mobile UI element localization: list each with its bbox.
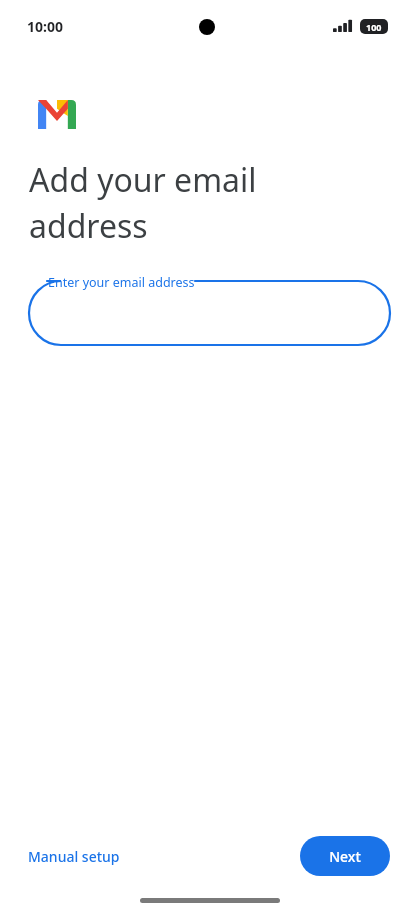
staticText: Enter your email address (48, 274, 195, 291)
staticText: Add your email address (29, 158, 257, 247)
staticText: 100 (366, 21, 382, 33)
staticText: 10:00 (27, 17, 63, 36)
staticText: Manual setup (28, 847, 120, 866)
button[interactable]: Next (300, 836, 390, 876)
button[interactable]: Enter your email address (0, 273, 419, 345)
staticText: Next (329, 847, 361, 866)
button[interactable]: Manual setup (28, 841, 120, 872)
